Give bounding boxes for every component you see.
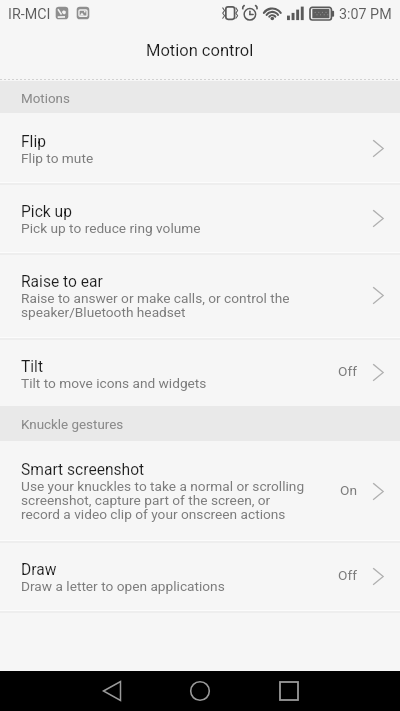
staticText: Off: [338, 363, 357, 379]
button[interactable]: Recent apps: [267, 671, 311, 711]
staticText: Smart screenshot: [21, 461, 145, 479]
button[interactable]: Draw: [0, 541, 400, 611]
staticText: Pick up: [21, 203, 72, 221]
staticText: Use your knuckles to take a normal or sc…: [21, 480, 305, 522]
staticText: Knuckle gestures: [21, 417, 124, 433]
staticText: Raise to answer or make calls, or contro…: [21, 292, 290, 320]
staticText: Draw a letter to open applications: [21, 580, 225, 594]
staticText: Pick up to reduce ring volume: [21, 222, 201, 236]
staticText: 3:07 PM: [339, 6, 392, 23]
button[interactable]: Pick up: [0, 183, 400, 253]
staticText: Tilt: [21, 358, 43, 376]
staticText: Motions: [21, 91, 70, 107]
staticText: Raise to ear: [21, 273, 103, 291]
button[interactable]: Raise to ear: [0, 253, 400, 338]
button[interactable]: Home: [178, 671, 222, 711]
staticText: Flip: [21, 133, 46, 151]
staticText: Motion control: [146, 41, 254, 60]
staticText: IR-MCI: [8, 6, 51, 23]
staticText: Off: [338, 567, 357, 583]
staticText: Tilt to move icons and widgets: [21, 377, 207, 391]
button[interactable]: Flip: [0, 113, 400, 183]
button[interactable]: Back: [90, 671, 134, 711]
button[interactable]: Smart screenshot: [0, 441, 400, 541]
staticText: Draw: [21, 561, 57, 579]
staticText: Flip to mute: [21, 152, 94, 166]
staticText: On: [340, 482, 357, 498]
button[interactable]: Tilt: [0, 338, 400, 406]
